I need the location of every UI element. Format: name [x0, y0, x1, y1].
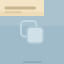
button[interactable]: Duplicate: [21, 21, 43, 43]
button[interactable]: [0, 0, 44, 16]
